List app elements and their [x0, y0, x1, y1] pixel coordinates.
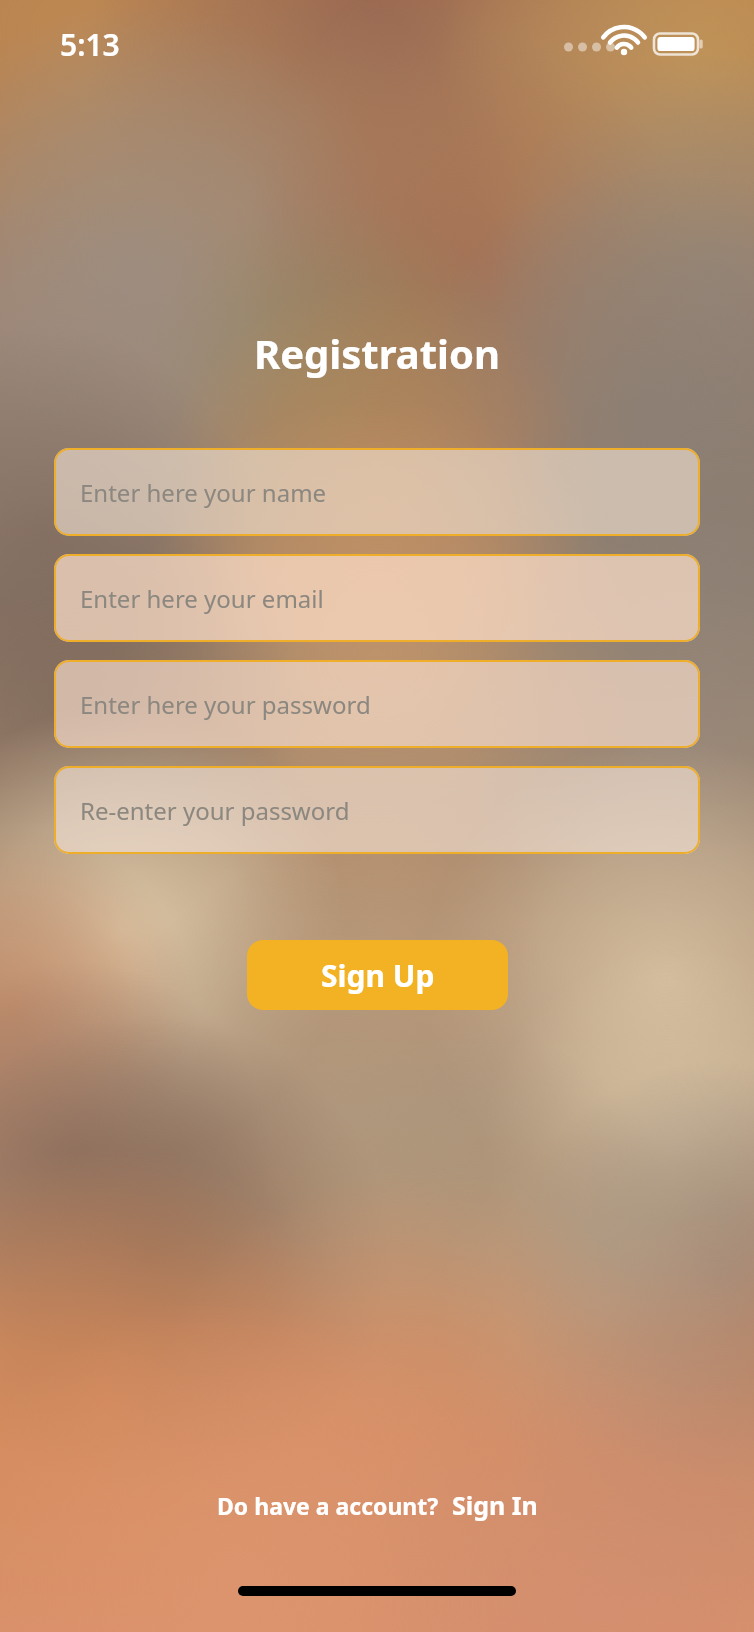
button[interactable]: Enter here your name: [54, 448, 700, 536]
button[interactable]: Sign In: [452, 1488, 538, 1522]
button[interactable]: Re-enter your password: [54, 766, 700, 854]
staticText: Re-enter your password: [80, 794, 350, 827]
staticText: Enter here your name: [80, 476, 327, 509]
button[interactable]: Enter here your password: [54, 660, 700, 748]
staticText: Enter here your password: [80, 688, 371, 721]
staticText: Enter here your email: [80, 582, 324, 615]
staticText: Registration: [0, 326, 754, 380]
staticText: Sign Up: [321, 955, 435, 996]
button[interactable]: Sign Up: [247, 940, 508, 1010]
button[interactable]: Enter here your email: [54, 554, 700, 642]
button[interactable]: Do have a account?: [217, 1490, 439, 1521]
staticText: 5:13: [60, 24, 120, 65]
